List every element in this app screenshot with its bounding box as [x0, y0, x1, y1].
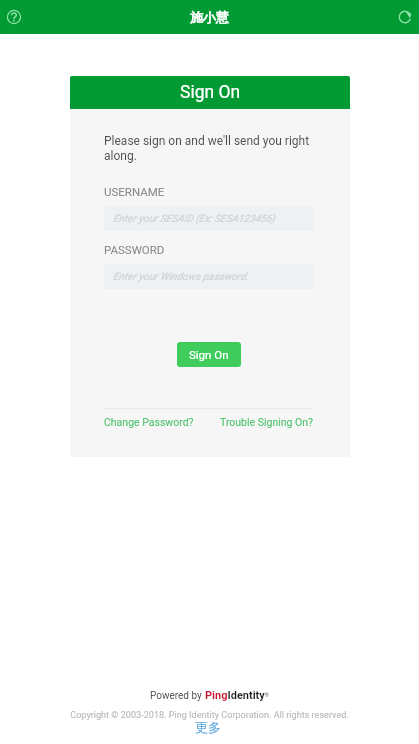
button[interactable]: Refresh [392, 4, 418, 30]
staticText: 更多 [195, 719, 221, 735]
staticText: 施小慧 [190, 9, 229, 25]
staticText: Trouble Signing On? [220, 416, 314, 428]
staticText: Change Password? [104, 416, 194, 428]
staticText: Powered by [150, 690, 205, 702]
staticText: USERNAME [104, 185, 165, 198]
button[interactable]: Trouble Signing On? [220, 416, 314, 428]
staticText: Please sign on and we'll send you right … [104, 134, 319, 163]
button[interactable]: Enter your Windows password. [104, 264, 314, 289]
staticText: Enter your SESAID (Ex: SESA123456) [113, 213, 275, 225]
button[interactable]: Sign On [177, 342, 241, 367]
staticText: Copyright © 2003-2018. Ping Identity Cor… [70, 710, 349, 721]
staticText: PingIdentity® [205, 689, 269, 702]
staticText: Sign On [180, 82, 241, 103]
staticText: PASSWORD [104, 243, 165, 256]
staticText: Enter your Windows password. [113, 271, 249, 283]
button[interactable]: 更多 [195, 719, 221, 735]
button[interactable]: Change Password? [104, 416, 194, 428]
button[interactable]: Enter your SESAID (Ex: SESA123456) [104, 206, 314, 231]
staticText: Sign On [189, 348, 229, 361]
button[interactable]: Help [1, 4, 27, 30]
